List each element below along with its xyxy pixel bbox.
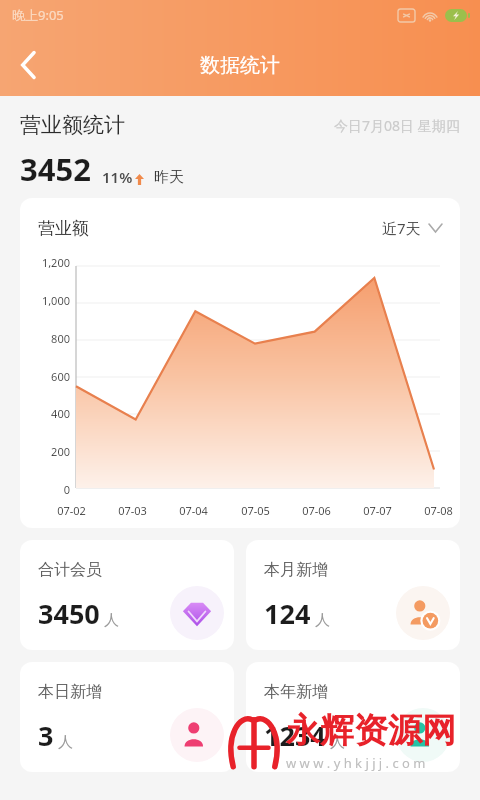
staticText: 人: [58, 733, 73, 752]
staticText: 合计会员: [38, 560, 102, 580]
staticText: 人: [104, 611, 119, 630]
staticText: 1,200: [41, 255, 70, 268]
button[interactable]: New today: [20, 662, 234, 772]
staticText: 800: [51, 331, 70, 344]
staticText: 人: [330, 733, 345, 752]
staticText: 3452: [20, 148, 91, 190]
staticText: 600: [51, 369, 70, 382]
button[interactable]: New this year: [246, 662, 460, 772]
staticText: 07-06: [302, 503, 331, 518]
staticText: 本日新增: [38, 682, 102, 702]
staticText: 晚上9:05: [12, 6, 64, 24]
staticText: 11%: [102, 167, 133, 187]
staticText: 07-05: [241, 503, 270, 518]
staticText: 本月新增: [264, 560, 328, 580]
staticText: 营业额: [38, 218, 89, 239]
staticText: 数据统计: [200, 53, 280, 78]
staticText: 今日7月08日 星期四: [334, 116, 460, 135]
staticText: 07-02: [57, 503, 86, 518]
staticText: 近7天: [382, 218, 421, 238]
button[interactable]: Back: [6, 42, 52, 88]
staticText: 3450: [38, 595, 100, 632]
staticText: 07-04: [179, 503, 208, 518]
button[interactable]: Total members: [20, 540, 234, 650]
staticText: w w w . y h k j j j . c o m: [286, 754, 426, 772]
staticText: 400: [51, 406, 70, 419]
staticText: 1,000: [41, 293, 70, 306]
staticText: 07-03: [118, 503, 147, 518]
staticText: 200: [51, 444, 70, 457]
staticText: 永辉资源网: [286, 709, 456, 752]
staticText: 07-08: [424, 503, 453, 518]
staticText: 07-07: [363, 503, 392, 518]
staticText: 0: [63, 482, 70, 495]
staticText: 本年新增: [264, 682, 328, 702]
button[interactable]: New this month: [246, 540, 460, 650]
staticText: 124: [264, 595, 311, 632]
button[interactable]: 近7天: [380, 216, 444, 240]
staticText: 营业额统计: [20, 112, 125, 138]
staticText: 3: [38, 717, 54, 754]
staticText: 人: [315, 611, 330, 630]
staticText: 1234: [264, 717, 326, 754]
staticText: 昨天: [154, 168, 184, 187]
